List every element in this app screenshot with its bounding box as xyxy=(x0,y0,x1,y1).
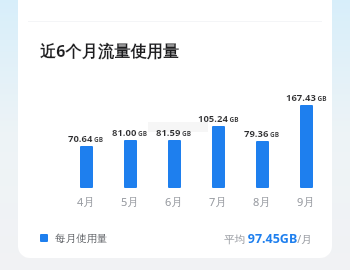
staticText: 4月 xyxy=(77,194,95,208)
staticText: 5月 xyxy=(121,194,139,208)
staticText: 79.36 GB xyxy=(244,127,280,140)
button[interactable]: 每月使用量 xyxy=(40,224,312,252)
staticText: 81.00 GB xyxy=(112,126,148,139)
staticText: 近6个月流量使用量 xyxy=(40,40,179,62)
staticText: 167.43 GB xyxy=(286,91,327,104)
staticText: 7月 xyxy=(209,194,227,208)
button[interactable]: 8月 79.36 GB xyxy=(256,141,269,188)
staticText: 平均 97.45GB/月 xyxy=(224,230,312,247)
button[interactable]: 9月 167.43 GB xyxy=(300,105,313,188)
staticText: 8月 xyxy=(253,194,271,208)
staticText: 105.24 GB xyxy=(198,112,239,125)
button[interactable]: 5月 81.00 GB xyxy=(124,140,137,188)
staticText: 每月使用量 xyxy=(55,232,108,245)
staticText: 9月 xyxy=(297,194,315,208)
staticText: 81.59 GB xyxy=(156,126,192,139)
button[interactable]: 7月 105.24 GB xyxy=(212,126,225,188)
button[interactable]: 4月 70.64 GB xyxy=(80,146,93,188)
staticText: 70.64 GB xyxy=(68,132,104,145)
staticText: 6月 xyxy=(165,194,183,208)
button[interactable]: 6月 81.59 GB xyxy=(168,140,181,188)
